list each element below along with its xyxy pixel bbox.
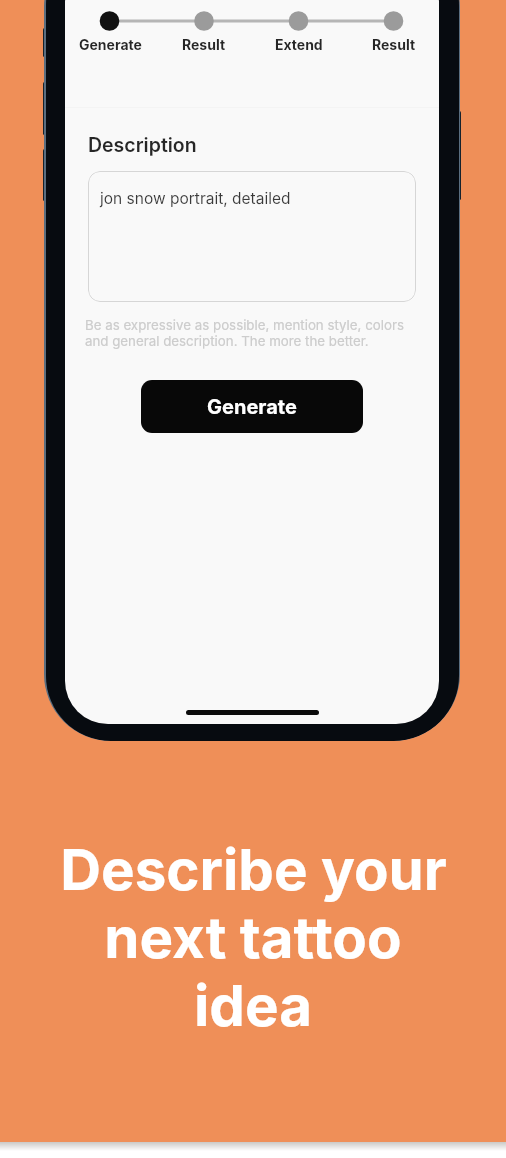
staticText: Generate	[207, 395, 297, 419]
staticText: Generate	[79, 36, 142, 53]
staticText: idea	[194, 971, 312, 1039]
staticText: Extend	[275, 36, 323, 53]
staticText: Describe your	[60, 835, 447, 903]
staticText: Description	[88, 133, 197, 157]
staticText: Result	[372, 36, 416, 53]
staticText: next tattoo	[104, 903, 402, 971]
button[interactable]: Generate	[141, 380, 363, 433]
staticText: Be as expressive as possible, mention st…	[85, 317, 404, 349]
staticText: jon snow portrait, detailed	[100, 189, 291, 208]
staticText: Result	[182, 36, 226, 53]
button[interactable]: jon snow portrait, detailed	[88, 171, 416, 302]
